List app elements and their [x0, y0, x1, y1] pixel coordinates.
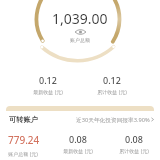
button[interactable]: Toggle balance visibility [72, 27, 88, 37]
staticText: 1,039.00 [52, 9, 108, 28]
staticText: 0.12 [39, 74, 57, 86]
staticText: 0.08 [69, 133, 87, 145]
staticText: 近30天年化投资回报率3.90% [76, 116, 150, 124]
staticText: 累计收益 (元) [119, 148, 149, 155]
staticText: 可转账户 [9, 115, 38, 124]
staticText: 0.12 [103, 74, 121, 86]
staticText: 779.24 [8, 133, 40, 147]
staticText: 累计收益 (元) [97, 89, 127, 96]
staticText: 最新收益 (元) [63, 148, 93, 155]
button[interactable]: 可转账户 [3, 111, 157, 128]
staticText: 账户总额 (元) [8, 151, 38, 158]
staticText: 账户总额 [70, 37, 90, 43]
staticText: 最新收益 (元) [33, 89, 63, 96]
staticText: 0.08 [125, 133, 143, 145]
